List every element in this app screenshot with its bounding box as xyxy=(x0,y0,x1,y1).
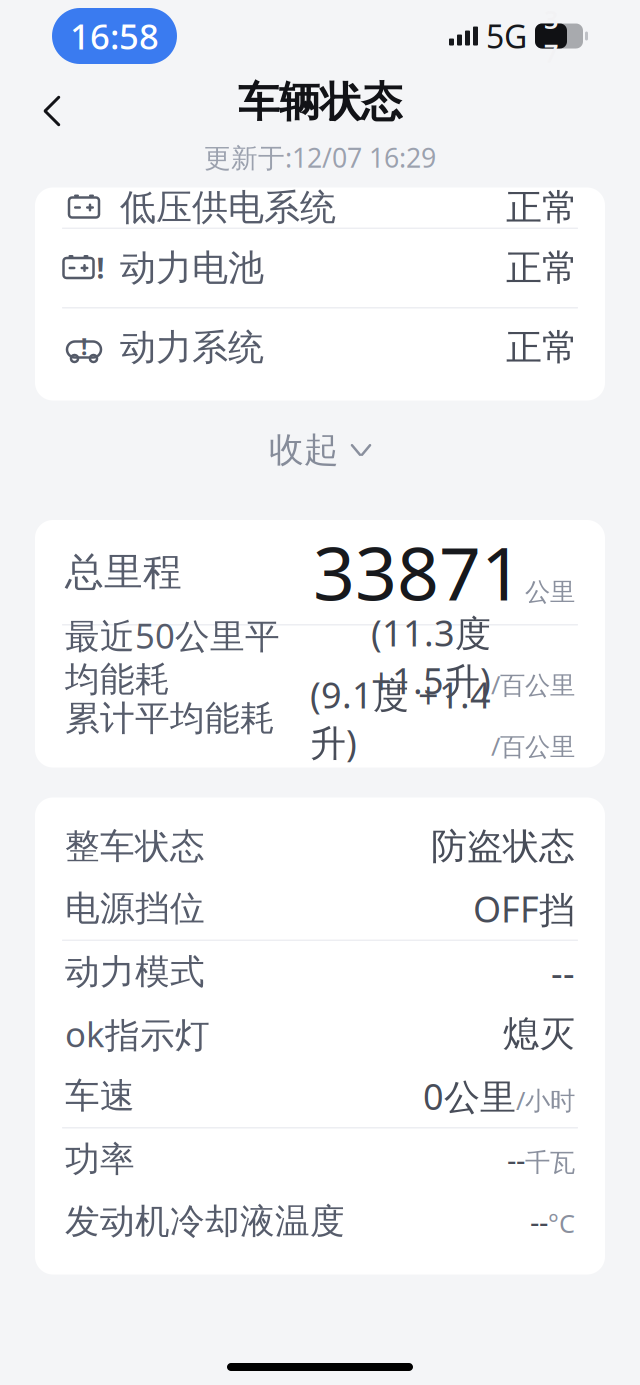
staticText: /百公里 xyxy=(491,729,575,763)
staticText: 电源挡位 xyxy=(65,887,205,930)
button[interactable]: 低压供电系统 xyxy=(35,168,605,246)
staticText: ! xyxy=(96,249,104,287)
staticText: 更新于:12/07 16:29 xyxy=(204,140,436,175)
staticText: 千瓦 xyxy=(525,1147,575,1178)
button[interactable]: 电源挡位 xyxy=(35,877,605,939)
staticText: /小时 xyxy=(516,1083,575,1117)
staticText: 动力系统 xyxy=(120,325,264,370)
button[interactable]: 返回 xyxy=(24,83,80,139)
staticText: 总里程 xyxy=(65,548,182,596)
staticText: (11.3度 +1.5升) xyxy=(371,609,491,704)
staticText: 防盗状态 xyxy=(431,824,575,869)
staticText: °C xyxy=(548,1206,575,1240)
staticText: OFF挡 xyxy=(473,884,575,932)
staticText: 33871 xyxy=(313,523,523,621)
button[interactable]: ! xyxy=(35,308,605,386)
staticText: (9.1度 +1.4升) xyxy=(310,671,491,766)
staticText: -- xyxy=(551,948,575,996)
staticText: -- xyxy=(530,1202,548,1241)
button[interactable]: 动力模式 xyxy=(35,941,605,1003)
button[interactable]: 最近50公里平均能耗 xyxy=(35,625,605,687)
staticText: -- xyxy=(507,1140,525,1179)
staticText: 最近50公里平均能耗 xyxy=(65,612,280,701)
staticText: 16:58 xyxy=(70,13,159,59)
staticText: 车速 xyxy=(65,1075,135,1117)
staticText: 发动机冷却液温度 xyxy=(65,1200,345,1243)
button[interactable]: ! xyxy=(35,229,605,307)
button[interactable]: 累计平均能耗 xyxy=(35,687,605,749)
staticText: 37 xyxy=(544,2,558,70)
staticText: 正常 xyxy=(506,246,578,290)
staticText: 低压供电系统 xyxy=(120,185,336,230)
button[interactable]: 总里程 xyxy=(35,520,605,624)
staticText: 0公里 xyxy=(423,1072,516,1120)
staticText: 动力电池 xyxy=(120,246,264,290)
button[interactable]: 收起 xyxy=(0,408,640,492)
staticText: 正常 xyxy=(506,185,578,230)
button[interactable]: 功率 xyxy=(35,1128,605,1190)
button[interactable]: ok指示灯 xyxy=(35,1003,605,1065)
staticText: 公里 xyxy=(525,576,575,608)
staticText: 正常 xyxy=(506,325,578,370)
staticText: 动力模式 xyxy=(65,951,205,993)
staticText: /百公里 xyxy=(491,668,575,701)
staticText: ok指示灯 xyxy=(65,1011,210,1057)
staticText: 功率 xyxy=(65,1138,135,1181)
button[interactable]: 整车状态 xyxy=(35,815,605,877)
staticText: 整车状态 xyxy=(65,825,205,868)
staticText: 车辆状态 xyxy=(238,77,402,128)
staticText: 5G xyxy=(486,15,527,57)
button[interactable]: 车速 xyxy=(35,1065,605,1127)
button[interactable]: 发动机冷却液温度 xyxy=(35,1190,605,1252)
staticText: 熄灭 xyxy=(503,1012,575,1056)
staticText: 累计平均能耗 xyxy=(65,697,275,740)
staticText: ! xyxy=(81,331,87,361)
staticText: 收起 xyxy=(269,429,339,471)
